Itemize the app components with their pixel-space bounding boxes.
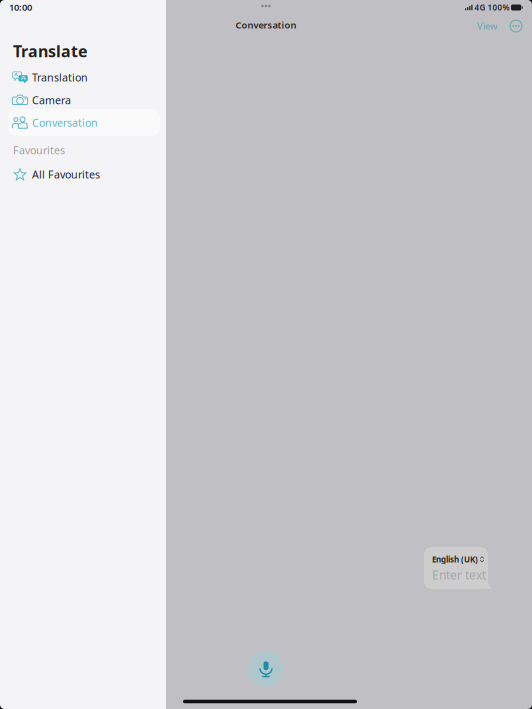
button[interactable]: Conversation bbox=[0, 111, 166, 134]
staticText: Enter text bbox=[432, 567, 486, 583]
staticText: Translate bbox=[13, 40, 88, 62]
button[interactable]: Camera bbox=[0, 89, 166, 111]
button[interactable]: View bbox=[473, 15, 506, 37]
button[interactable]: All Favourites bbox=[0, 163, 166, 186]
button[interactable]: English (UK) bbox=[424, 547, 492, 589]
staticText: All Favourites bbox=[32, 167, 100, 181]
staticText: 10:00 bbox=[9, 1, 32, 13]
staticText: Conversation bbox=[235, 19, 296, 31]
button[interactable]: Record bbox=[244, 647, 288, 691]
staticText: 4G 100% bbox=[474, 2, 509, 13]
staticText: Favourites bbox=[13, 143, 65, 157]
button[interactable]: Translation bbox=[0, 66, 166, 89]
staticText: Translation bbox=[32, 70, 88, 85]
staticText: Camera bbox=[32, 93, 71, 107]
staticText: English (UK) bbox=[432, 554, 478, 565]
button[interactable]: More options bbox=[506, 16, 526, 36]
staticText: Conversation bbox=[32, 116, 98, 130]
staticText: View bbox=[477, 20, 497, 32]
